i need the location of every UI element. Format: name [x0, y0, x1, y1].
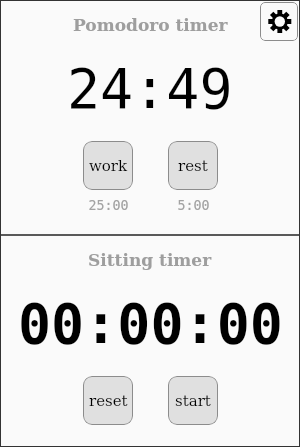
staticText: 5:00	[177, 198, 210, 213]
staticText: 25:00	[88, 198, 129, 213]
staticText: 00:00:00	[18, 292, 283, 356]
staticText: 24:49	[67, 57, 233, 121]
button[interactable]: work	[83, 141, 133, 190]
staticText: reset	[89, 392, 128, 409]
staticText: start	[175, 392, 211, 409]
button[interactable]: reset	[83, 376, 133, 425]
staticText: Sitting timer	[88, 250, 212, 270]
button[interactable]: Settings	[260, 2, 298, 41]
staticText: work	[89, 157, 128, 174]
staticText: Pomodoro timer	[73, 15, 228, 35]
staticText: rest	[178, 157, 208, 174]
button[interactable]: start	[168, 376, 218, 425]
button[interactable]: rest	[168, 141, 218, 190]
